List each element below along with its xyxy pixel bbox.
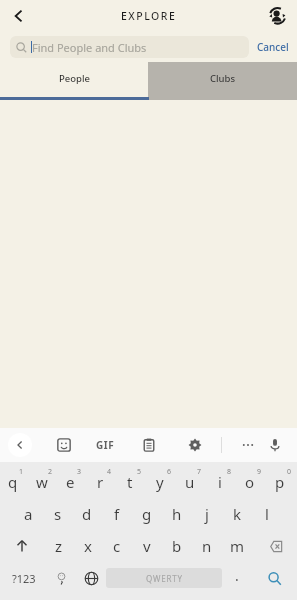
button[interactable]: n (192, 530, 222, 562)
staticText: o (245, 472, 255, 492)
button[interactable]: f (102, 498, 132, 530)
button[interactable]: t (117, 466, 147, 498)
button[interactable]: Emoji and comma (47, 562, 76, 594)
button[interactable]: b (162, 530, 192, 562)
staticText: Find People and Clubs (32, 40, 147, 55)
button[interactable]: People (0, 62, 148, 100)
button[interactable]: g (132, 498, 162, 530)
button[interactable]: Voice input (263, 433, 287, 457)
button[interactable]: Backspace (252, 530, 297, 562)
button[interactable]: More options (236, 433, 260, 457)
button[interactable]: Shift (0, 530, 44, 562)
staticText: 6 (167, 467, 172, 477)
staticText: 9 (257, 467, 262, 477)
staticText: 1 (19, 467, 24, 477)
button[interactable]: r (87, 466, 117, 498)
staticText: 4 (107, 467, 112, 477)
staticText: . (235, 566, 239, 585)
button[interactable]: s (43, 498, 72, 530)
staticText: f (114, 504, 120, 524)
button[interactable]: Space (106, 568, 222, 588)
staticText: l (265, 504, 269, 524)
button[interactable]: y (147, 466, 177, 498)
staticText: w (36, 472, 48, 492)
staticText: y (156, 472, 164, 492)
staticText: z (55, 536, 63, 556)
staticText: t (127, 472, 133, 492)
button[interactable]: h (162, 498, 192, 530)
staticText: ?123 (12, 571, 36, 586)
button[interactable]: u (177, 466, 207, 498)
staticText: GIF (96, 438, 115, 452)
staticText: 0 (287, 467, 292, 477)
staticText: b (172, 536, 182, 556)
button[interactable]: Find friends (263, 2, 291, 30)
button[interactable]: m (222, 530, 252, 562)
button[interactable]: k (222, 498, 252, 530)
staticText: a (24, 504, 33, 524)
staticText: q (8, 472, 18, 492)
staticText: g (142, 504, 152, 524)
staticText: QWERTY (146, 573, 183, 584)
button[interactable]: GIF (96, 438, 115, 452)
button[interactable]: Search (252, 562, 297, 594)
button[interactable]: Clubs (148, 62, 297, 100)
button[interactable]: w (29, 466, 58, 498)
button[interactable]: j (192, 498, 222, 530)
staticText: r (97, 472, 104, 492)
staticText: k (233, 504, 242, 524)
button[interactable]: i (207, 466, 237, 498)
button[interactable]: Stickers (52, 433, 76, 457)
button[interactable]: l (252, 498, 282, 530)
button[interactable]: z (44, 530, 73, 562)
staticText: x (84, 536, 92, 556)
button[interactable]: ?123 (0, 562, 47, 594)
button[interactable]: q (0, 466, 29, 498)
staticText: n (202, 536, 212, 556)
button[interactable]: Cancel (257, 40, 289, 54)
staticText: m (230, 536, 245, 556)
staticText: i (218, 472, 222, 492)
staticText: d (82, 504, 92, 524)
staticText: 3 (77, 467, 82, 477)
staticText: EXPLORE (121, 9, 177, 23)
staticText: h (172, 504, 182, 524)
button[interactable]: c (102, 530, 132, 562)
staticText: j (205, 504, 209, 524)
button[interactable]: Find People and Clubs (10, 36, 249, 58)
button[interactable]: Settings (183, 433, 207, 457)
staticText: 8 (227, 467, 232, 477)
staticText: e (66, 472, 75, 492)
staticText: Cancel (257, 40, 289, 54)
staticText: 7 (197, 467, 202, 477)
staticText: Clubs (210, 72, 236, 85)
button[interactable]: a (14, 498, 43, 530)
staticText: People (59, 72, 90, 85)
button[interactable]: o (237, 466, 267, 498)
staticText: 5 (137, 467, 142, 477)
button[interactable]: p (267, 466, 297, 498)
button[interactable]: Clipboard (137, 433, 161, 457)
button[interactable]: Back (4, 1, 34, 31)
staticText: 2 (48, 467, 53, 477)
staticText: c (113, 536, 121, 556)
button[interactable]: d (72, 498, 102, 530)
button[interactable]: Back (8, 433, 32, 457)
button[interactable]: v (132, 530, 162, 562)
button[interactable]: . (222, 562, 252, 594)
staticText: p (275, 472, 285, 492)
staticText: u (185, 472, 195, 492)
staticText: s (54, 504, 62, 524)
button[interactable]: Change keyboard language (76, 562, 106, 594)
button[interactable]: e (58, 466, 87, 498)
staticText: v (143, 536, 151, 556)
button[interactable]: x (73, 530, 102, 562)
